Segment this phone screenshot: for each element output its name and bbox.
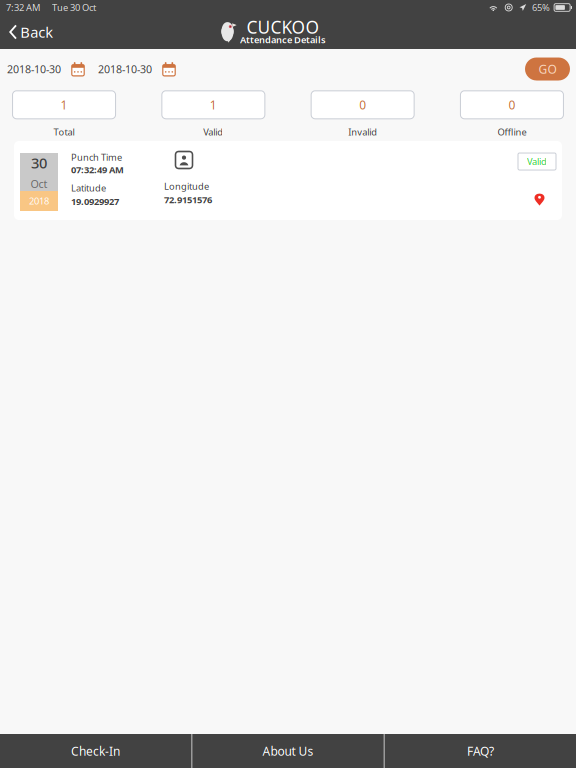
staticText: Tue 30 Oct <box>52 1 96 14</box>
staticText: GO <box>538 61 556 77</box>
button[interactable]: Show location on map <box>534 193 544 206</box>
staticText: 30 <box>31 153 47 173</box>
staticText: Latitude <box>71 182 106 194</box>
staticText: Valid <box>203 126 223 138</box>
staticText: FAQ? <box>467 743 494 759</box>
staticText: Valid <box>527 155 547 168</box>
staticText: 19.0929927 <box>71 195 119 208</box>
staticText: 2018-10-30 <box>7 62 61 76</box>
staticText: About Us <box>262 743 313 759</box>
button[interactable]: 1 <box>13 91 116 138</box>
staticText: Punch Time <box>71 151 122 163</box>
button[interactable]: 30 <box>14 141 562 220</box>
button[interactable]: About Us <box>192 734 383 768</box>
staticText: 2018-10-30 <box>98 62 152 76</box>
staticText: 72.9151576 <box>164 193 212 206</box>
staticText: 65% <box>532 1 550 14</box>
staticText: Total <box>54 126 75 138</box>
staticText: Oct <box>30 177 47 191</box>
button[interactable]: 0 <box>311 91 414 138</box>
button[interactable]: 2018-10-30 <box>98 62 176 76</box>
button[interactable]: GO <box>525 57 570 80</box>
button[interactable]: Check-In <box>0 734 191 768</box>
button[interactable]: 0 <box>460 91 563 138</box>
staticText: Invalid <box>348 126 377 138</box>
button[interactable]: FAQ? <box>385 734 576 768</box>
staticText: 0 <box>359 97 366 113</box>
staticText: 1 <box>210 97 217 113</box>
button[interactable]: 2018-10-30 <box>7 62 85 76</box>
staticText: Back <box>20 22 53 42</box>
staticText: 1 <box>61 97 68 113</box>
staticText: Attendance Details <box>240 33 326 46</box>
button[interactable]: Back <box>0 15 65 49</box>
staticText: 7:32 AM <box>6 1 40 14</box>
staticText: CUCKOO <box>246 15 319 38</box>
staticText: Check-In <box>71 743 120 759</box>
staticText: Offline <box>497 126 526 138</box>
button[interactable]: 1 <box>162 91 265 138</box>
staticText: 0 <box>508 97 515 113</box>
staticText: 2018 <box>29 195 49 207</box>
staticText: 07:32:49 AM <box>71 163 124 176</box>
staticText: Longitude <box>164 180 209 192</box>
